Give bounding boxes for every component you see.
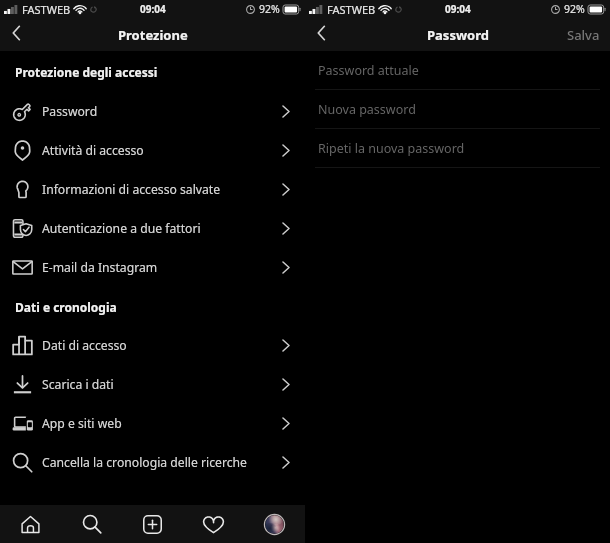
staticText: Salva [567, 26, 600, 44]
staticText: Dati di accesso [42, 337, 127, 354]
button[interactable]: E-mail da Instagram [0, 248, 305, 287]
staticText: Autenticazione a due fattori [42, 220, 201, 237]
button[interactable]: Ripeti la nuova password [305, 129, 610, 168]
staticText: Scarica i dati [42, 376, 114, 393]
button[interactable]: Scarica i dati [0, 365, 305, 404]
staticText: 92% [564, 2, 585, 16]
button[interactable]: Autenticazione a due fattori [0, 209, 305, 248]
staticText: 09:04 [445, 2, 471, 16]
button[interactable]: Home [0, 505, 61, 543]
staticText: Password [427, 26, 489, 44]
staticText: Protezione [118, 26, 188, 44]
staticText: Attività di accesso [42, 142, 144, 159]
staticText: Ripeti la nuova password [318, 140, 465, 157]
staticText: Nuova password [318, 101, 416, 118]
staticText: Informazioni di accesso salvate [42, 181, 221, 198]
button[interactable]: Activity [183, 505, 244, 543]
staticText: Dati e cronologia [15, 299, 117, 315]
staticText: Password attuale [318, 62, 419, 79]
button[interactable]: Back [4, 21, 28, 45]
staticText: 09:04 [140, 2, 166, 16]
staticText: E-mail da Instagram [42, 259, 158, 276]
button[interactable]: Password [0, 92, 305, 131]
staticText: Cancella la cronologia delle ricerche [42, 454, 247, 471]
button[interactable]: Search [61, 505, 122, 543]
staticText: Password [42, 103, 98, 120]
button[interactable]: Profile [244, 505, 305, 543]
button[interactable]: Dati di accesso [0, 326, 305, 365]
button[interactable]: Attività di accesso [0, 131, 305, 170]
button[interactable]: Password attuale [305, 51, 610, 90]
button[interactable]: App e siti web [0, 404, 305, 443]
staticText: Protezione degli accessi [15, 64, 158, 80]
staticText: 92% [259, 2, 280, 16]
button[interactable]: Nuova password [305, 90, 610, 129]
button[interactable]: Cancella la cronologia delle ricerche [0, 443, 305, 482]
staticText: FASTWEB [327, 2, 376, 17]
staticText: App e siti web [42, 415, 122, 432]
button[interactable]: Salva [557, 18, 610, 51]
button[interactable]: Create new post [122, 505, 183, 543]
button[interactable]: Informazioni di accesso salvate [0, 170, 305, 209]
button[interactable]: Back [309, 21, 333, 45]
staticText: FASTWEB [22, 2, 71, 17]
